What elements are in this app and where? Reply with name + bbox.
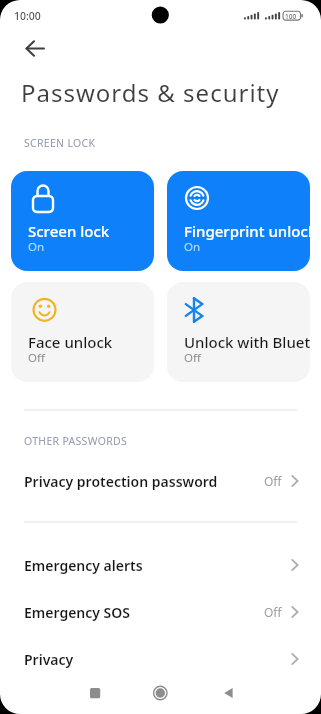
staticText: Privacy protection password: [24, 472, 218, 491]
staticText: Emergency SOS: [24, 603, 131, 622]
staticText: Screen lock: [28, 221, 154, 241]
staticText: Fingerprint unlock: [184, 221, 310, 241]
button[interactable]: Face unlock: [11, 282, 154, 382]
button[interactable]: [75, 673, 115, 713]
staticText: 10:00: [14, 9, 41, 23]
button[interactable]: [140, 673, 180, 713]
button[interactable]: [208, 673, 248, 713]
button[interactable]: Privacy: [0, 636, 321, 682]
staticText: On: [184, 239, 201, 255]
staticText: Off: [184, 350, 201, 366]
button[interactable]: Fingerprint unlock: [167, 171, 310, 271]
button[interactable]: Privacy protection password: [0, 458, 321, 504]
button[interactable]: Unlock with Bluetooth device: [167, 282, 310, 382]
staticText: Off: [264, 604, 282, 620]
staticText: Unlock with Bluetooth device: [184, 332, 310, 352]
button[interactable]: Screen lock: [11, 171, 154, 271]
staticText: OTHER PASSWORDS: [24, 434, 127, 448]
button[interactable]: Emergency SOS: [0, 589, 321, 635]
staticText: Off: [264, 473, 282, 489]
staticText: 100: [285, 12, 297, 21]
staticText: Emergency alerts: [24, 556, 143, 575]
button[interactable]: [16, 38, 52, 60]
staticText: Passwords & security: [21, 76, 280, 109]
staticText: Off: [28, 350, 45, 366]
staticText: Face unlock: [28, 332, 154, 352]
staticText: Privacy: [24, 650, 74, 669]
staticText: SCREEN LOCK: [24, 136, 96, 150]
staticText: On: [28, 239, 45, 255]
button[interactable]: Emergency alerts: [0, 542, 321, 588]
